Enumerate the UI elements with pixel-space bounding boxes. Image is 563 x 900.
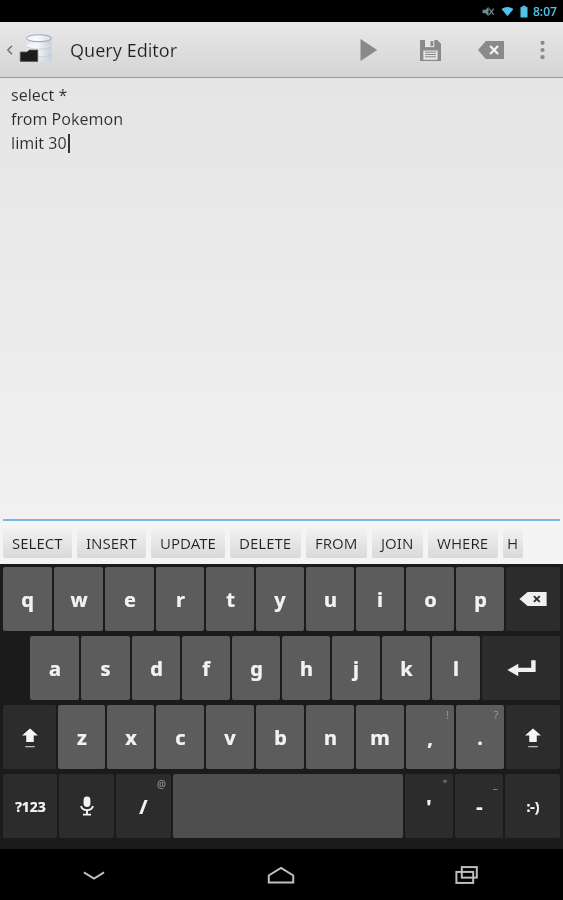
staticText: / (139, 793, 148, 820)
button[interactable]: INSERT (77, 528, 146, 558)
button[interactable]: Save (399, 22, 461, 78)
button[interactable]: Home (187, 849, 375, 900)
staticText: c (175, 724, 186, 751)
button[interactable]: l (432, 636, 480, 700)
button[interactable]: v (206, 705, 254, 769)
button[interactable]: Hide keyboard (0, 849, 187, 900)
button[interactable]: s (81, 636, 130, 700)
button[interactable]: e (105, 567, 154, 631)
button[interactable]: r (156, 567, 204, 631)
staticText: e (124, 586, 136, 613)
staticText: from Pokemon (11, 108, 124, 130)
button[interactable]: Delete (506, 567, 560, 631)
staticText: ' (426, 793, 432, 820)
button[interactable]: JOIN (372, 528, 423, 558)
button[interactable]: m (356, 705, 404, 769)
staticText: s (100, 655, 111, 682)
button[interactable]: WHERE (428, 528, 498, 558)
staticText: m (370, 724, 390, 751)
button[interactable]: Shift (3, 705, 56, 769)
staticText: a (49, 655, 61, 682)
staticText: f (202, 655, 210, 682)
staticText: v (224, 724, 236, 751)
staticText: k (400, 655, 413, 682)
button[interactable]: c (156, 705, 204, 769)
button[interactable]: SELECT (3, 528, 72, 558)
staticText: FROM (315, 533, 358, 553)
button[interactable]: Navigate up (0, 22, 62, 78)
button[interactable]: i (356, 567, 404, 631)
button[interactable]: a (30, 636, 79, 700)
staticText: select * (11, 84, 68, 106)
staticText: w (70, 586, 88, 613)
button[interactable]: ?123 (3, 774, 57, 838)
button[interactable]: u (306, 567, 354, 631)
staticText: g (250, 655, 263, 682)
staticText: ! (446, 708, 449, 722)
button[interactable]: Run query (337, 22, 399, 78)
button[interactable]: x (107, 705, 154, 769)
staticText: ?123 (15, 797, 46, 816)
button[interactable]: n (306, 705, 354, 769)
button[interactable]: Enter (482, 636, 560, 700)
staticText: b (274, 724, 287, 751)
button[interactable]: FROM (306, 528, 367, 558)
button[interactable]: Shift (506, 705, 560, 769)
button[interactable]: , (406, 705, 454, 769)
button[interactable]: w (54, 567, 103, 631)
button[interactable]: ' (405, 774, 453, 838)
button[interactable]: b (256, 705, 304, 769)
button[interactable]: :-) (505, 774, 560, 838)
staticText: UPDATE (160, 533, 216, 553)
button[interactable]: . (456, 705, 504, 769)
staticText: . (477, 724, 483, 751)
button[interactable]: h (282, 636, 330, 700)
button[interactable]: j (332, 636, 380, 700)
button[interactable]: o (406, 567, 454, 631)
staticText: SELECT (12, 533, 63, 553)
staticText: q (21, 586, 34, 613)
button[interactable]: p (456, 567, 504, 631)
staticText: t (226, 586, 235, 613)
button[interactable]: H (503, 528, 523, 558)
button[interactable]: Voice input (59, 774, 114, 838)
button[interactable]: z (58, 705, 105, 769)
staticText: n (324, 724, 337, 751)
button[interactable]: UPDATE (151, 528, 225, 558)
button[interactable]: select * (0, 78, 563, 521)
staticText: INSERT (86, 533, 137, 553)
button[interactable]: Clear (461, 22, 521, 78)
staticText: x (125, 724, 137, 751)
button[interactable]: d (132, 636, 180, 700)
button[interactable]: f (182, 636, 230, 700)
button[interactable]: Recent apps (375, 849, 563, 900)
staticText: l (453, 655, 459, 682)
staticText: p (474, 586, 487, 613)
button[interactable]: y (256, 567, 304, 631)
button[interactable]: t (206, 567, 254, 631)
staticText: j (353, 655, 359, 682)
button[interactable]: g (232, 636, 280, 700)
button[interactable]: - (455, 774, 503, 838)
staticText: limit 30 (11, 132, 67, 154)
staticText: JOIN (381, 533, 414, 553)
staticText: - (476, 793, 483, 820)
staticText: d (150, 655, 163, 682)
button[interactable]: k (382, 636, 430, 700)
staticText: _ (493, 777, 498, 791)
button[interactable]: More options (521, 22, 563, 78)
staticText: 8:07 (533, 3, 557, 19)
button[interactable]: DELETE (230, 528, 301, 558)
staticText: y (274, 586, 286, 613)
staticText: h (300, 655, 313, 682)
staticText: " (443, 777, 448, 791)
staticText: :-) (526, 797, 540, 816)
staticText: ? (494, 708, 499, 722)
button[interactable]: / (116, 774, 171, 838)
staticText: H (507, 533, 519, 553)
staticText: i (377, 586, 383, 613)
staticText: WHERE (437, 533, 489, 553)
button[interactable]: q (3, 567, 52, 631)
staticText: DELETE (239, 533, 292, 553)
